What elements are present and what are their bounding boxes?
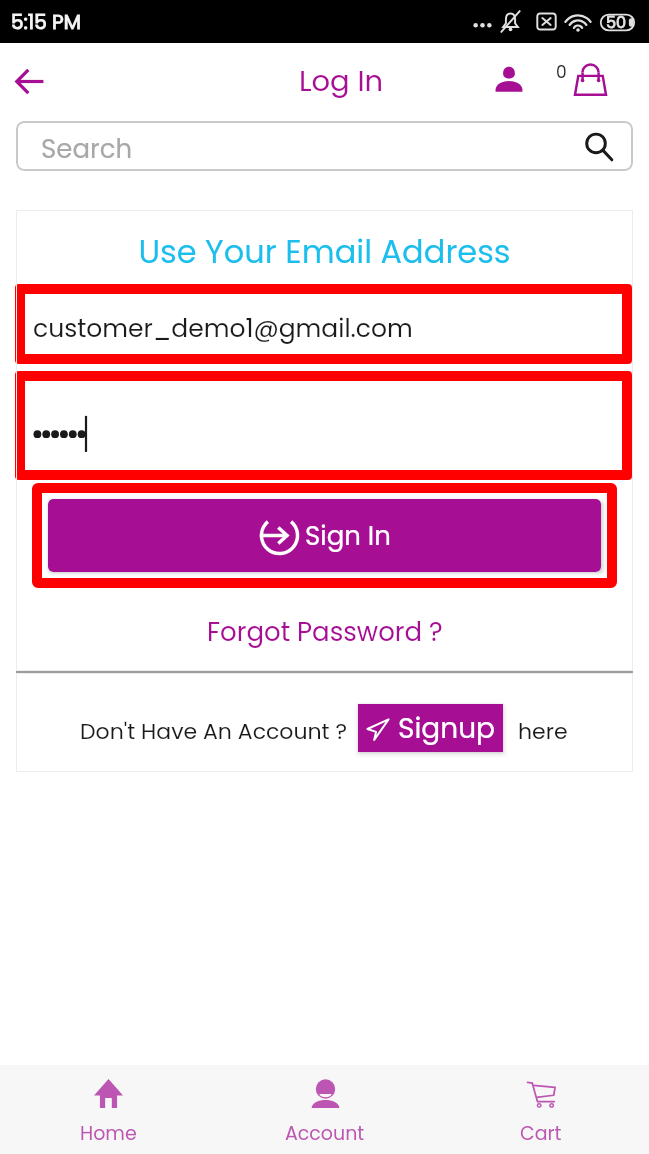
button[interactable]: Account (484, 52, 534, 102)
staticText: Sign In (305, 518, 391, 554)
staticText: 5:15 PM (11, 8, 81, 36)
button[interactable]: Cart (433, 1065, 649, 1154)
staticText: here (518, 716, 568, 747)
button[interactable]: Account (217, 1065, 433, 1154)
staticText: Home (80, 1120, 137, 1147)
staticText: Account (285, 1120, 365, 1147)
button[interactable]: Signup (358, 704, 503, 752)
button[interactable]: customer_demo1@gmail.com (15, 284, 632, 364)
button[interactable]: Cart (550, 51, 616, 107)
staticText: Cart (520, 1120, 562, 1147)
button[interactable]: Back (3, 55, 55, 107)
staticText: Use Your Email Address (16, 229, 633, 274)
staticText: Don't Have An Account ? (80, 716, 348, 747)
staticText: customer_demo1@gmail.com (33, 311, 413, 346)
staticText: Search (41, 131, 133, 167)
button[interactable]: Sign In (48, 499, 601, 572)
button[interactable]: Search (16, 121, 633, 171)
staticText: Signup (398, 709, 496, 748)
staticText: Forgot Password ? (207, 614, 443, 650)
button[interactable] (15, 371, 632, 480)
staticText: 0 (556, 60, 567, 84)
button[interactable]: Home (0, 1065, 217, 1154)
staticText: Log In (299, 61, 384, 102)
staticText: 50 (606, 11, 627, 33)
button[interactable]: Forgot Password ? (16, 607, 633, 657)
